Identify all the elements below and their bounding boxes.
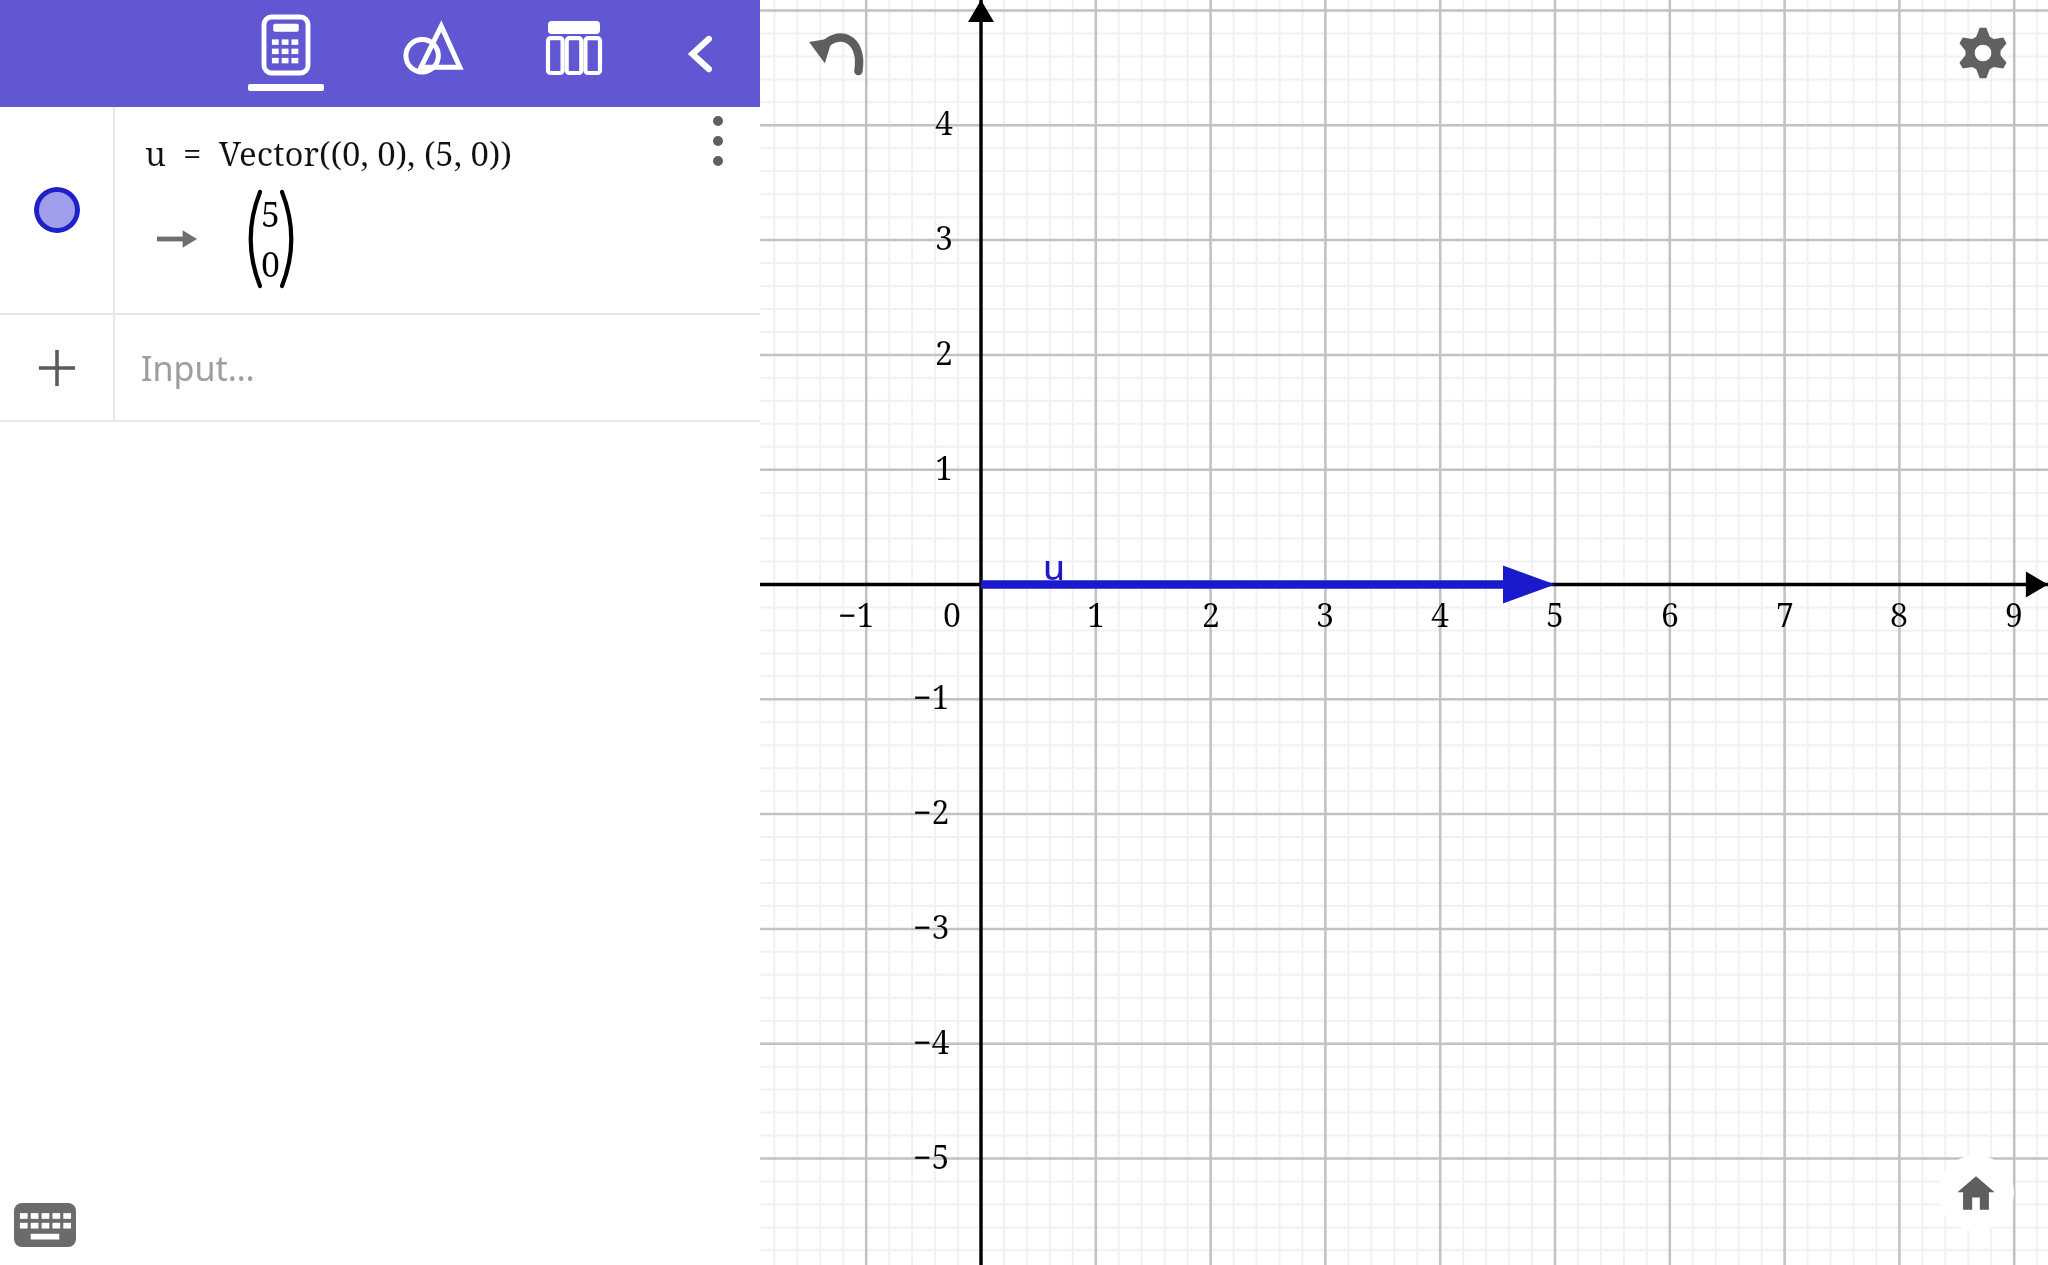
- staticText: 8: [1890, 593, 1908, 637]
- button[interactable]: Table tab: [524, 0, 624, 107]
- staticText: 7: [1776, 593, 1794, 637]
- button[interactable]: Settings: [1944, 14, 2022, 92]
- button[interactable]: Graphing calculator tab: [236, 0, 336, 107]
- button[interactable]: Show keyboard: [14, 1203, 76, 1247]
- staticText: 2: [935, 331, 953, 375]
- button[interactable]: Undo: [796, 12, 876, 92]
- staticText: 0: [943, 593, 961, 637]
- staticText: −4: [913, 1020, 950, 1064]
- staticText: 5: [1546, 593, 1564, 637]
- staticText: −1: [913, 675, 950, 719]
- staticText: 6: [1661, 593, 1679, 637]
- staticText: 1: [1087, 593, 1105, 637]
- staticText: −3: [913, 905, 950, 949]
- staticText: 9: [2005, 593, 2023, 637]
- staticText: −5: [913, 1135, 950, 1179]
- staticText: u = Vector((0, 0), (5, 0)): [145, 131, 512, 176]
- button[interactable]: Geometry tab: [382, 0, 482, 107]
- button[interactable]: More options: [690, 113, 746, 169]
- staticText: 4: [1431, 593, 1449, 637]
- staticText: 2: [1202, 593, 1220, 637]
- button[interactable]: Reset view to home: [1938, 1155, 2014, 1231]
- button[interactable]: Input…: [115, 315, 760, 420]
- button[interactable]: u = Vector((0, 0), (5, 0)): [115, 107, 760, 313]
- staticText: 1: [935, 446, 953, 490]
- staticText: 0: [261, 241, 281, 287]
- button[interactable]: Add new input row: [0, 315, 113, 420]
- staticText: −1: [838, 593, 875, 637]
- staticText: 3: [1316, 593, 1334, 637]
- staticText: u: [1043, 543, 1065, 591]
- staticText: Input…: [141, 345, 255, 391]
- staticText: 5: [261, 191, 281, 237]
- button[interactable]: Collapse algebra view: [664, 17, 738, 91]
- button[interactable]: Toggle visibility of object u: [0, 107, 113, 313]
- staticText: −2: [913, 790, 950, 834]
- staticText: 4: [935, 101, 953, 145]
- staticText: 3: [935, 216, 953, 260]
